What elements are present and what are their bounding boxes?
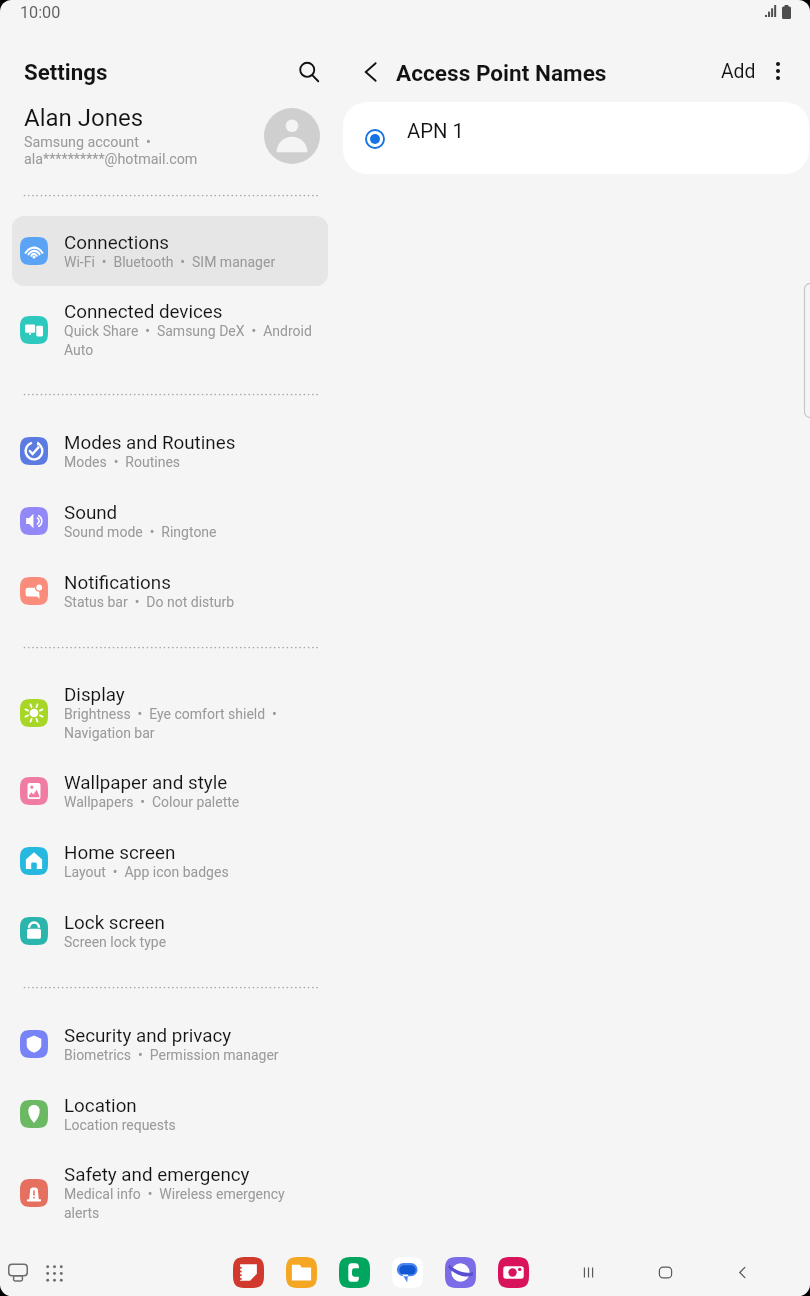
staticText: Brightness • Eye comfort shield • Naviga… <box>64 706 277 741</box>
staticText: Modes • Routines <box>64 454 181 470</box>
staticText: Home screen <box>64 842 176 864</box>
staticText: APN 1 <box>407 119 464 143</box>
button[interactable]: Sound <box>12 486 328 556</box>
staticText: Sound <box>64 502 118 524</box>
staticText: Connected devices <box>64 301 223 323</box>
button[interactable]: Search <box>290 53 327 90</box>
button[interactable]: Navigate back <box>352 53 389 90</box>
button[interactable]: Wallpaper and style <box>12 756 328 826</box>
staticText: Settings <box>24 59 108 85</box>
button[interactable]: Connected devices <box>12 286 328 373</box>
staticText: Alan Jones <box>24 104 144 132</box>
staticText: Medical info • Wireless emergency alerts <box>64 1186 285 1221</box>
staticText: 10:00 <box>20 3 61 22</box>
button[interactable]: Safety and emergency <box>12 1149 328 1236</box>
staticText: Location requests <box>64 1117 176 1133</box>
staticText: Modes and Routines <box>64 432 236 454</box>
button[interactable]: Add <box>710 52 767 91</box>
button[interactable]: Messages <box>392 1257 423 1288</box>
staticText: Lock screen <box>64 912 165 934</box>
button[interactable]: Phone <box>339 1257 370 1288</box>
staticText: Add <box>721 60 756 83</box>
staticText: Display <box>64 684 125 706</box>
staticText: Location <box>64 1095 137 1117</box>
staticText: ala**********@hotmail.com <box>24 151 198 168</box>
staticText: Biometrics • Permission manager <box>64 1047 279 1063</box>
button[interactable]: Lock screen <box>12 896 328 966</box>
button[interactable]: Samsung Notes <box>233 1257 264 1288</box>
button[interactable]: Internet <box>445 1257 476 1288</box>
button[interactable]: Security and privacy <box>12 1009 328 1079</box>
staticText: Connections <box>64 232 170 254</box>
staticText: Notifications <box>64 572 171 594</box>
button[interactable]: Modes and Routines <box>12 416 328 486</box>
button[interactable]: My Files <box>286 1257 317 1288</box>
button[interactable]: More options <box>760 53 796 89</box>
button[interactable]: Camera <box>498 1257 529 1288</box>
staticText: Access Point Names <box>396 60 607 86</box>
staticText: Wallpaper and style <box>64 772 228 794</box>
button[interactable]: Alan Jones <box>0 96 340 176</box>
staticText: Security and privacy <box>64 1025 232 1047</box>
button[interactable]: Display <box>12 669 328 756</box>
staticText: Wi-Fi • Bluetooth • SIM manager <box>64 254 276 270</box>
button[interactable]: Location <box>12 1079 328 1149</box>
button[interactable]: Back <box>725 1255 759 1289</box>
button[interactable]: Connections <box>12 216 328 286</box>
staticText: Screen lock type <box>64 934 167 950</box>
button[interactable]: Recents <box>0 1254 36 1291</box>
button[interactable]: APN 1 <box>343 102 809 174</box>
button[interactable]: Home screen <box>12 826 328 896</box>
staticText: Layout • App icon badges <box>64 864 229 880</box>
button[interactable]: Apps list <box>36 1255 72 1291</box>
button[interactable]: Notifications <box>12 556 328 626</box>
button[interactable]: Recent apps <box>571 1255 605 1289</box>
staticText: Quick Share • Samsung DeX • Android Auto <box>64 323 312 358</box>
staticText: Samsung account • <box>24 134 151 151</box>
staticText: Status bar • Do not disturb <box>64 594 235 610</box>
staticText: Sound mode • Ringtone <box>64 524 217 540</box>
staticText: Safety and emergency <box>64 1164 250 1186</box>
button[interactable]: Home <box>648 1255 682 1289</box>
staticText: Wallpapers • Colour palette <box>64 794 240 810</box>
